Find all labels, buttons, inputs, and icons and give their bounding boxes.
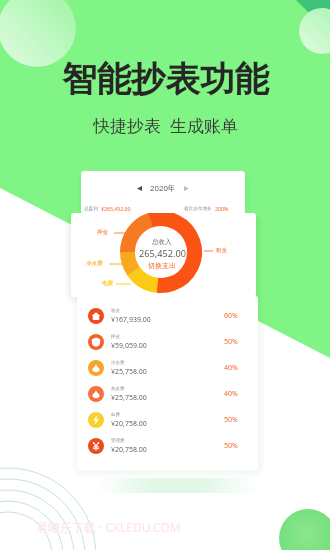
button[interactable]: 电费	[77, 407, 258, 433]
staticText: 冷水费	[111, 360, 125, 366]
staticText: 电费	[102, 280, 114, 287]
button[interactable]: 押金	[77, 329, 258, 355]
button[interactable]: 租金	[77, 303, 258, 329]
staticText: 冷水费	[86, 260, 103, 267]
staticText: 相比去年增长	[184, 206, 212, 212]
staticText: 押金	[97, 229, 109, 236]
staticText: 晨曦乐下载 · CXLEDU.COM	[36, 519, 181, 535]
staticText: ¥265,452.00	[101, 205, 131, 212]
button[interactable]: 管理费	[77, 433, 258, 459]
staticText: 智能抄表功能	[62, 58, 269, 101]
staticText: 管理费	[111, 438, 125, 444]
staticText: 快捷抄表 生成账单	[93, 114, 238, 137]
staticText: 265,452.00	[139, 247, 186, 260]
staticText: ¥20,758.00	[111, 445, 147, 455]
staticText: 总收入	[152, 238, 172, 246]
staticText: ¥25,758.00	[111, 393, 147, 403]
staticText: ¥25,758.00	[111, 367, 147, 377]
button[interactable]: 2020年	[81, 171, 245, 214]
button[interactable]: 冷水费	[77, 355, 258, 381]
staticText: 租金	[111, 308, 120, 314]
staticText: 总盈利	[84, 206, 98, 212]
staticText: 60%	[224, 311, 238, 321]
staticText: 切换支出	[148, 261, 176, 270]
staticText: 40%	[224, 363, 238, 373]
staticText: 40%	[224, 389, 238, 399]
button[interactable]: 2020年	[81, 183, 245, 194]
button[interactable]: 热水费	[77, 381, 258, 407]
staticText: 50%	[224, 415, 238, 425]
staticText: 租金	[216, 247, 228, 254]
staticText: ¥167,939.00	[111, 315, 151, 325]
staticText: 50%	[224, 441, 238, 451]
staticText: 2020年	[150, 183, 176, 194]
staticText: 电费	[111, 412, 120, 418]
staticText: ¥20,758.00	[111, 419, 147, 429]
staticText: 50%	[224, 337, 238, 347]
staticText: 热水费	[111, 386, 125, 392]
staticText: 200%	[215, 205, 229, 212]
staticText: 押金	[111, 334, 120, 340]
staticText: ¥59,059.00	[111, 341, 147, 351]
